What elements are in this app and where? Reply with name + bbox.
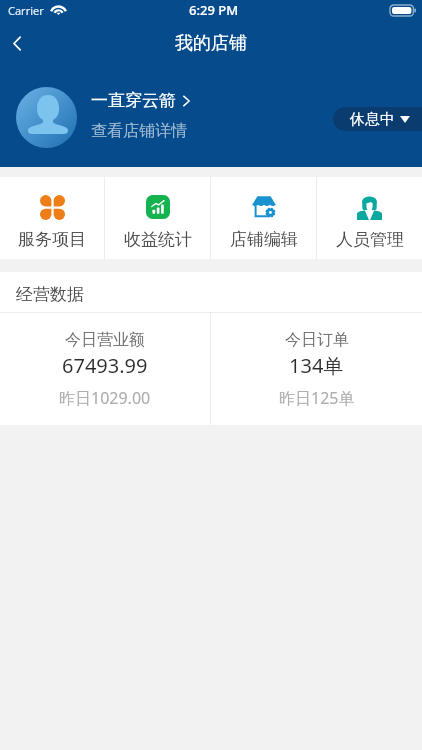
button[interactable]: Avatar	[16, 87, 77, 148]
button[interactable]: Back	[0, 22, 34, 64]
staticText: 经营数据	[16, 284, 84, 305]
staticText: Carrier	[8, 3, 44, 18]
staticText: 收益统计	[124, 229, 192, 250]
staticText: 昨日125单	[279, 387, 355, 409]
staticText: 我的店铺	[175, 32, 247, 55]
staticText: 查看店铺详情	[91, 121, 187, 141]
staticText: 134单	[289, 352, 344, 379]
staticText: 今日订单	[285, 330, 349, 350]
button[interactable]: 一直穿云箭	[91, 90, 190, 111]
button[interactable]: 服务项目	[0, 177, 104, 259]
button[interactable]: 今日订单	[211, 313, 422, 425]
staticText: 店铺编辑	[230, 229, 298, 250]
button[interactable]: 店铺编辑	[211, 177, 316, 259]
staticText: 服务项目	[18, 229, 86, 250]
button[interactable]: 人员管理	[317, 177, 422, 259]
button[interactable]: 收益统计	[105, 177, 210, 259]
staticText: 休息中	[350, 110, 395, 129]
staticText: 昨日1029.00	[59, 387, 151, 409]
staticText: 67493.99	[62, 352, 148, 379]
staticText: 一直穿云箭	[91, 90, 176, 111]
button[interactable]: 休息中	[333, 107, 422, 131]
staticText: 今日营业额	[65, 330, 145, 350]
staticText: 6:29 PM	[189, 1, 239, 19]
staticText: 人员管理	[336, 229, 404, 250]
button[interactable]: 今日营业额	[0, 313, 210, 425]
